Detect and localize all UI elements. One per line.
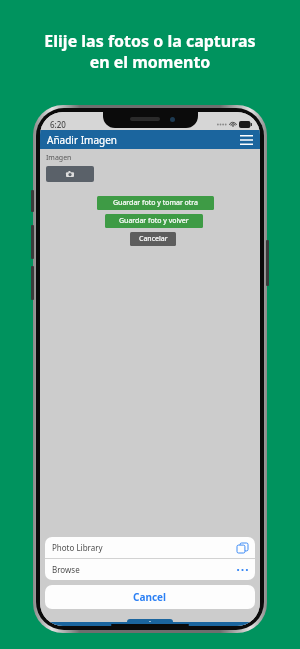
staticText: Photo Library <box>52 542 103 553</box>
button[interactable]: Photo Library <box>45 537 255 558</box>
staticText: Elije las fotos o la capturas en el mome… <box>44 30 256 73</box>
staticText: Guardar foto y volver <box>119 216 189 226</box>
button[interactable]: Cancelar <box>130 232 176 246</box>
staticText: 6:20 <box>50 119 66 130</box>
button[interactable]: Cancel <box>45 585 255 609</box>
staticText: Cancelar <box>139 234 168 244</box>
button[interactable]: Menú <box>238 132 254 148</box>
staticText: Añadir Imagen <box>47 133 117 147</box>
button[interactable]: Browse <box>45 559 255 580</box>
button[interactable]: Guardar foto y volver <box>105 214 203 228</box>
staticText: Cancel <box>133 590 167 604</box>
button[interactable]: Expandir <box>127 619 173 626</box>
staticText: Imagen <box>46 153 72 163</box>
staticText: Guardar foto y tomar otra <box>113 198 199 208</box>
staticText: Browse <box>52 564 80 575</box>
button[interactable]: Guardar foto y tomar otra <box>97 196 214 210</box>
button[interactable]: Tomar foto <box>46 166 94 182</box>
